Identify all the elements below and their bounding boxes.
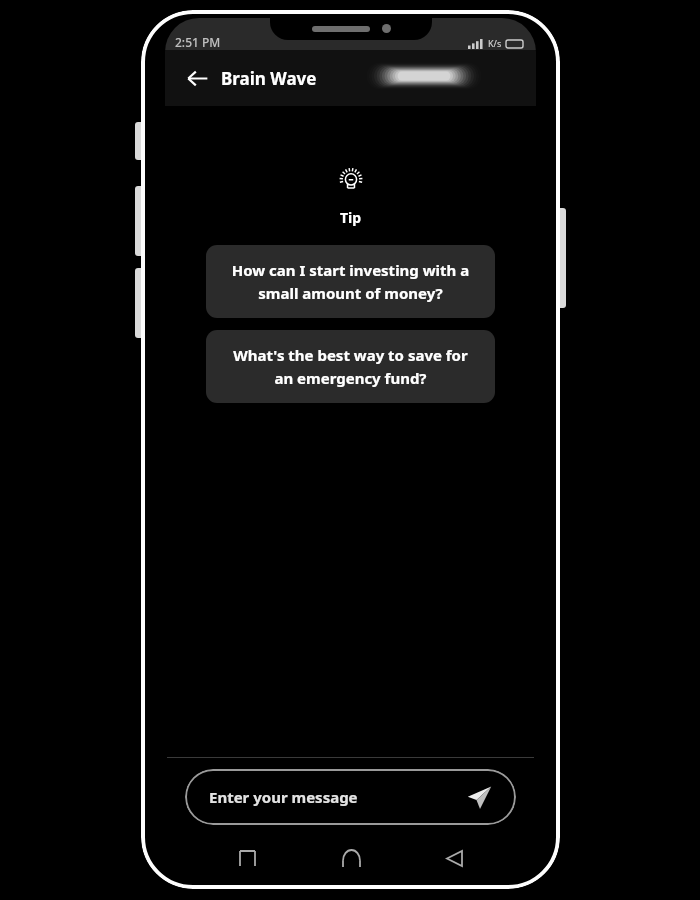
button[interactable]: Back	[433, 837, 475, 879]
button[interactable]: Back	[179, 60, 215, 96]
staticText: Tip	[340, 208, 362, 227]
button[interactable]: Enter your message	[185, 769, 516, 825]
staticText: K/s	[488, 37, 502, 49]
staticText: How can I start investing with a small a…	[224, 260, 477, 303]
staticText: 2:51 PM	[175, 34, 221, 50]
staticText: What's the best way to save for an emerg…	[224, 345, 477, 388]
button[interactable]: What's the best way to save for an emerg…	[206, 330, 495, 403]
staticText: Brain Wave	[221, 67, 317, 90]
button[interactable]: How can I start investing with a small a…	[206, 245, 495, 318]
staticText: Enter your message	[209, 787, 358, 807]
button[interactable]: Send	[462, 780, 496, 814]
button[interactable]: Home	[330, 837, 372, 879]
button[interactable]: Recents	[226, 837, 268, 879]
